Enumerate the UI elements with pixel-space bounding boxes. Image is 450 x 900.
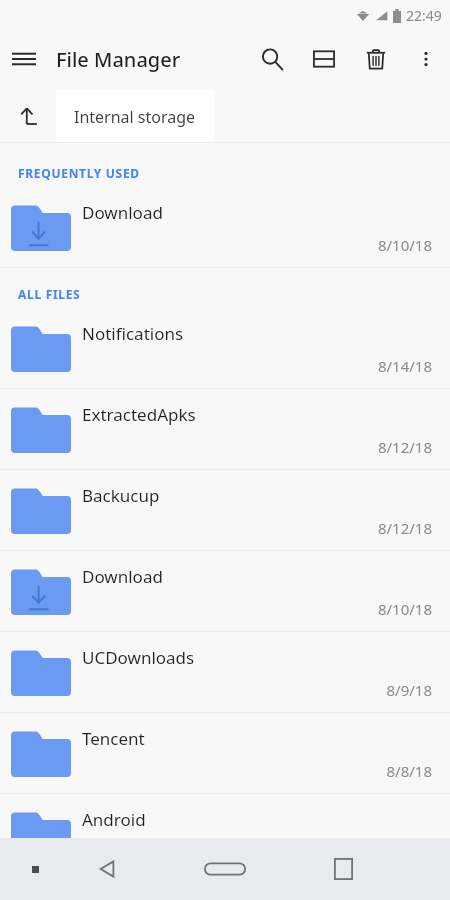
staticText: 8/9/18 <box>386 680 432 700</box>
staticText: Download <box>82 565 163 588</box>
button[interactable]: Internal storage <box>56 90 214 143</box>
button[interactable]: Switch keyboard <box>18 852 52 886</box>
staticText: Download <box>82 201 163 224</box>
button[interactable]: Android <box>0 794 450 875</box>
button[interactable]: Up one level <box>0 88 56 143</box>
staticText: FREQUENTLY USED <box>18 165 140 181</box>
staticText: UCDownloads <box>82 646 195 669</box>
staticText: 8/8/18 <box>386 761 432 781</box>
button[interactable]: Recent apps <box>284 843 402 895</box>
staticText: ALL FILES <box>18 286 81 302</box>
staticText: 8/12/18 <box>377 437 432 457</box>
staticText: Internal storage <box>74 106 196 128</box>
button[interactable]: Back <box>48 843 166 895</box>
staticText: 8/10/18 <box>377 235 432 255</box>
button[interactable]: UCDownloads <box>0 632 450 713</box>
staticText: 8/10/18 <box>377 599 432 619</box>
button[interactable]: Backucup <box>0 470 450 551</box>
staticText: 8/14/18 <box>377 356 432 376</box>
staticText: 22:49 <box>406 6 442 25</box>
staticText: File Manager <box>56 46 181 73</box>
button[interactable]: ExtractedApks <box>0 389 450 470</box>
button[interactable]: Home <box>166 843 284 895</box>
staticText: Backucup <box>82 484 160 507</box>
staticText: Tencent <box>82 727 145 750</box>
staticText: Notifications <box>82 322 184 345</box>
button[interactable]: Delete <box>350 33 402 85</box>
button[interactable]: Download <box>0 551 450 632</box>
staticText: 8/12/18 <box>377 518 432 538</box>
button[interactable]: Search <box>246 33 298 85</box>
button[interactable]: Open navigation drawer <box>0 35 48 83</box>
button[interactable]: Notifications <box>0 308 450 389</box>
button[interactable]: Download <box>0 187 450 268</box>
staticText: Android <box>82 808 146 831</box>
button[interactable]: Tencent <box>0 713 450 794</box>
button[interactable]: More options <box>402 35 450 83</box>
button[interactable]: Split view <box>298 33 350 85</box>
staticText: ExtractedApks <box>82 403 196 426</box>
